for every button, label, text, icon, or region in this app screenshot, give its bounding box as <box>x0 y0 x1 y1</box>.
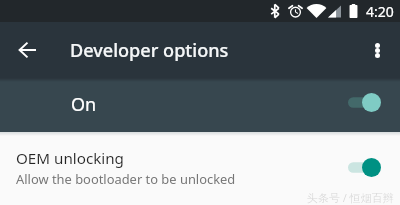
button[interactable]: Developer options on <box>342 87 387 118</box>
staticText: 头条号 / 恒烟百辫 <box>307 190 394 205</box>
button[interactable]: OEM unlocking <box>0 132 400 205</box>
staticText: Allow the bootloader to be unlocked <box>16 170 236 188</box>
button[interactable]: OEM unlocking toggle <box>342 152 387 183</box>
staticText: OEM unlocking <box>16 148 124 169</box>
button[interactable]: On <box>0 78 400 132</box>
staticText: Developer options <box>70 38 229 63</box>
button[interactable]: Navigate up <box>11 34 43 66</box>
staticText: On <box>71 92 97 117</box>
button[interactable]: More options <box>362 35 392 65</box>
staticText: 4:20 <box>366 2 394 21</box>
